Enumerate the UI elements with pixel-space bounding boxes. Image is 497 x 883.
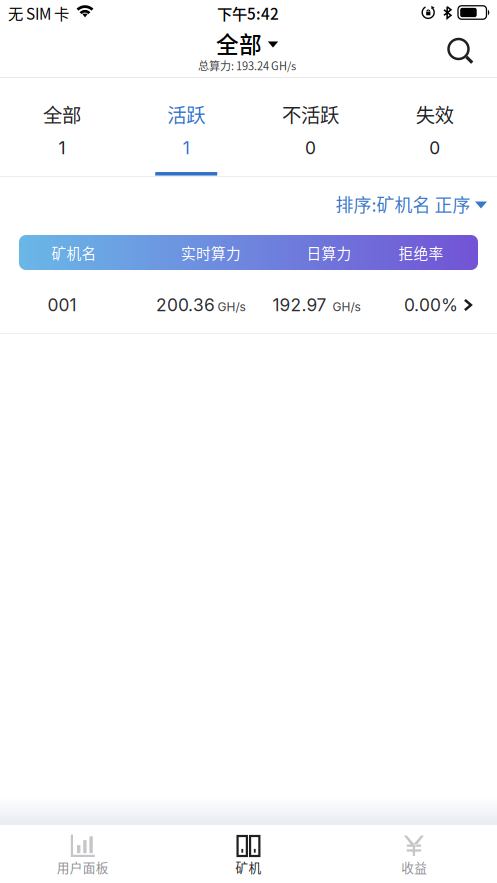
staticText: 1 [58, 137, 65, 158]
staticText: 排序:矿机名 正序 [335, 191, 470, 217]
staticText: 失效 [416, 100, 454, 128]
staticText: 全部 [216, 27, 262, 59]
button[interactable]: 全部 [147, 26, 347, 77]
button[interactable]: 搜索 [435, 26, 487, 77]
button[interactable]: 001 [0, 277, 497, 333]
staticText: 全部 [43, 100, 81, 128]
staticText: 矿机名 [51, 242, 96, 263]
staticText: 实时算力 [181, 242, 241, 263]
staticText: 下午5:42 [217, 2, 279, 24]
staticText: 1 [183, 137, 190, 158]
staticText: GH/s [217, 300, 245, 314]
staticText: 无 SIM 卡 [8, 2, 69, 24]
staticText: 总算力: 193.24 GH/s [198, 57, 296, 73]
staticText: 日算力 [306, 242, 351, 263]
staticText: GH/s [332, 300, 360, 314]
staticText: 192.97 [272, 294, 326, 315]
staticText: 0.00% [404, 294, 458, 315]
button[interactable]: 全部 [0, 78, 124, 176]
button[interactable]: 矿机 [166, 825, 331, 883]
button[interactable]: 收益 [331, 825, 497, 883]
staticText: 用户面板 [57, 858, 109, 876]
staticText: 0 [429, 137, 440, 158]
button[interactable]: 活跃 [124, 78, 248, 176]
staticText: 0 [305, 137, 316, 158]
button[interactable]: 不活跃 [248, 78, 373, 176]
staticText: 矿机 [235, 858, 261, 876]
staticText: 收益 [401, 858, 427, 876]
staticText: 拒绝率 [398, 242, 443, 263]
staticText: 200.36 [156, 294, 215, 315]
staticText: 活跃 [167, 100, 205, 128]
button[interactable]: 排序:矿机名 正序 [310, 182, 490, 226]
button[interactable]: 失效 [373, 78, 497, 176]
staticText: 001 [47, 294, 76, 315]
button[interactable]: 用户面板 [0, 825, 166, 883]
staticText: 不活跃 [282, 100, 339, 128]
